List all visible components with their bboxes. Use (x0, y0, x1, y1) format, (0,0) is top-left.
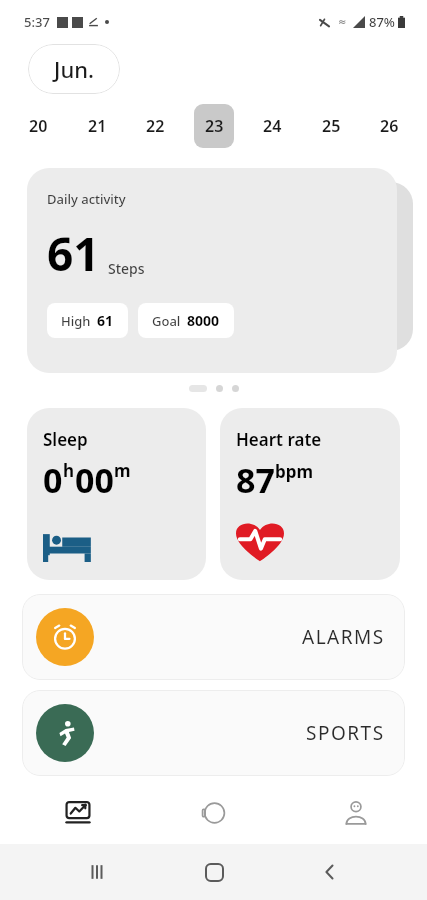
staticText: 00 (75, 457, 114, 503)
button[interactable]: Back (310, 852, 350, 892)
staticText: Daily activity (47, 190, 126, 208)
button[interactable]: High (47, 303, 128, 338)
staticText: 20 (29, 115, 48, 137)
staticText: 26 (380, 115, 399, 137)
button[interactable]: Jun. (28, 44, 120, 94)
button[interactable]: 25 (311, 104, 351, 148)
staticText: m (114, 459, 131, 482)
other: Heart rate (236, 520, 284, 562)
staticText: 5:37 (24, 13, 50, 31)
staticText: ALARMS (302, 624, 385, 650)
button[interactable]: Home (194, 852, 234, 892)
staticText: 23 (205, 115, 224, 137)
staticText: 21 (88, 115, 107, 137)
staticText: 61 (47, 222, 100, 285)
staticText: SPORTS (306, 720, 385, 746)
button[interactable]: 22 (135, 104, 175, 148)
button[interactable]: 23 (194, 104, 234, 148)
staticText: 8000 (187, 311, 220, 330)
button[interactable]: 21 (77, 104, 117, 148)
button[interactable]: Sleep (27, 408, 206, 580)
other: Sleep (43, 528, 95, 562)
staticText: Sleep (43, 428, 88, 451)
button[interactable]: Daily activity (27, 168, 397, 373)
staticText: ≈ (338, 16, 347, 28)
staticText: Goal (152, 312, 181, 330)
staticText: 87% (369, 13, 395, 31)
staticText: 25 (322, 115, 341, 137)
staticText: bpm (275, 460, 314, 483)
button[interactable]: Health (0, 782, 143, 844)
button[interactable]: Recents (77, 852, 117, 892)
staticText: Heart rate (236, 428, 322, 451)
staticText: 0 (43, 457, 63, 503)
button[interactable]: 24 (252, 104, 292, 148)
staticText: h (63, 459, 75, 482)
button[interactable]: 20 (18, 104, 58, 148)
button[interactable]: Heart rate (220, 408, 400, 580)
button[interactable]: Profile (285, 782, 427, 844)
button[interactable]: Watch (143, 782, 285, 844)
staticText: 61 (97, 311, 114, 330)
staticText: High (61, 312, 91, 330)
staticText: 24 (263, 115, 282, 137)
button[interactable]: SPORTS (22, 690, 405, 776)
button[interactable]: Goal (138, 303, 234, 338)
staticText: 87 (236, 457, 275, 503)
button[interactable]: ALARMS (22, 594, 405, 680)
staticText: Steps (108, 259, 145, 278)
button[interactable]: 26 (369, 104, 409, 148)
staticText: Jun. (54, 54, 94, 84)
staticText: 22 (146, 115, 165, 137)
